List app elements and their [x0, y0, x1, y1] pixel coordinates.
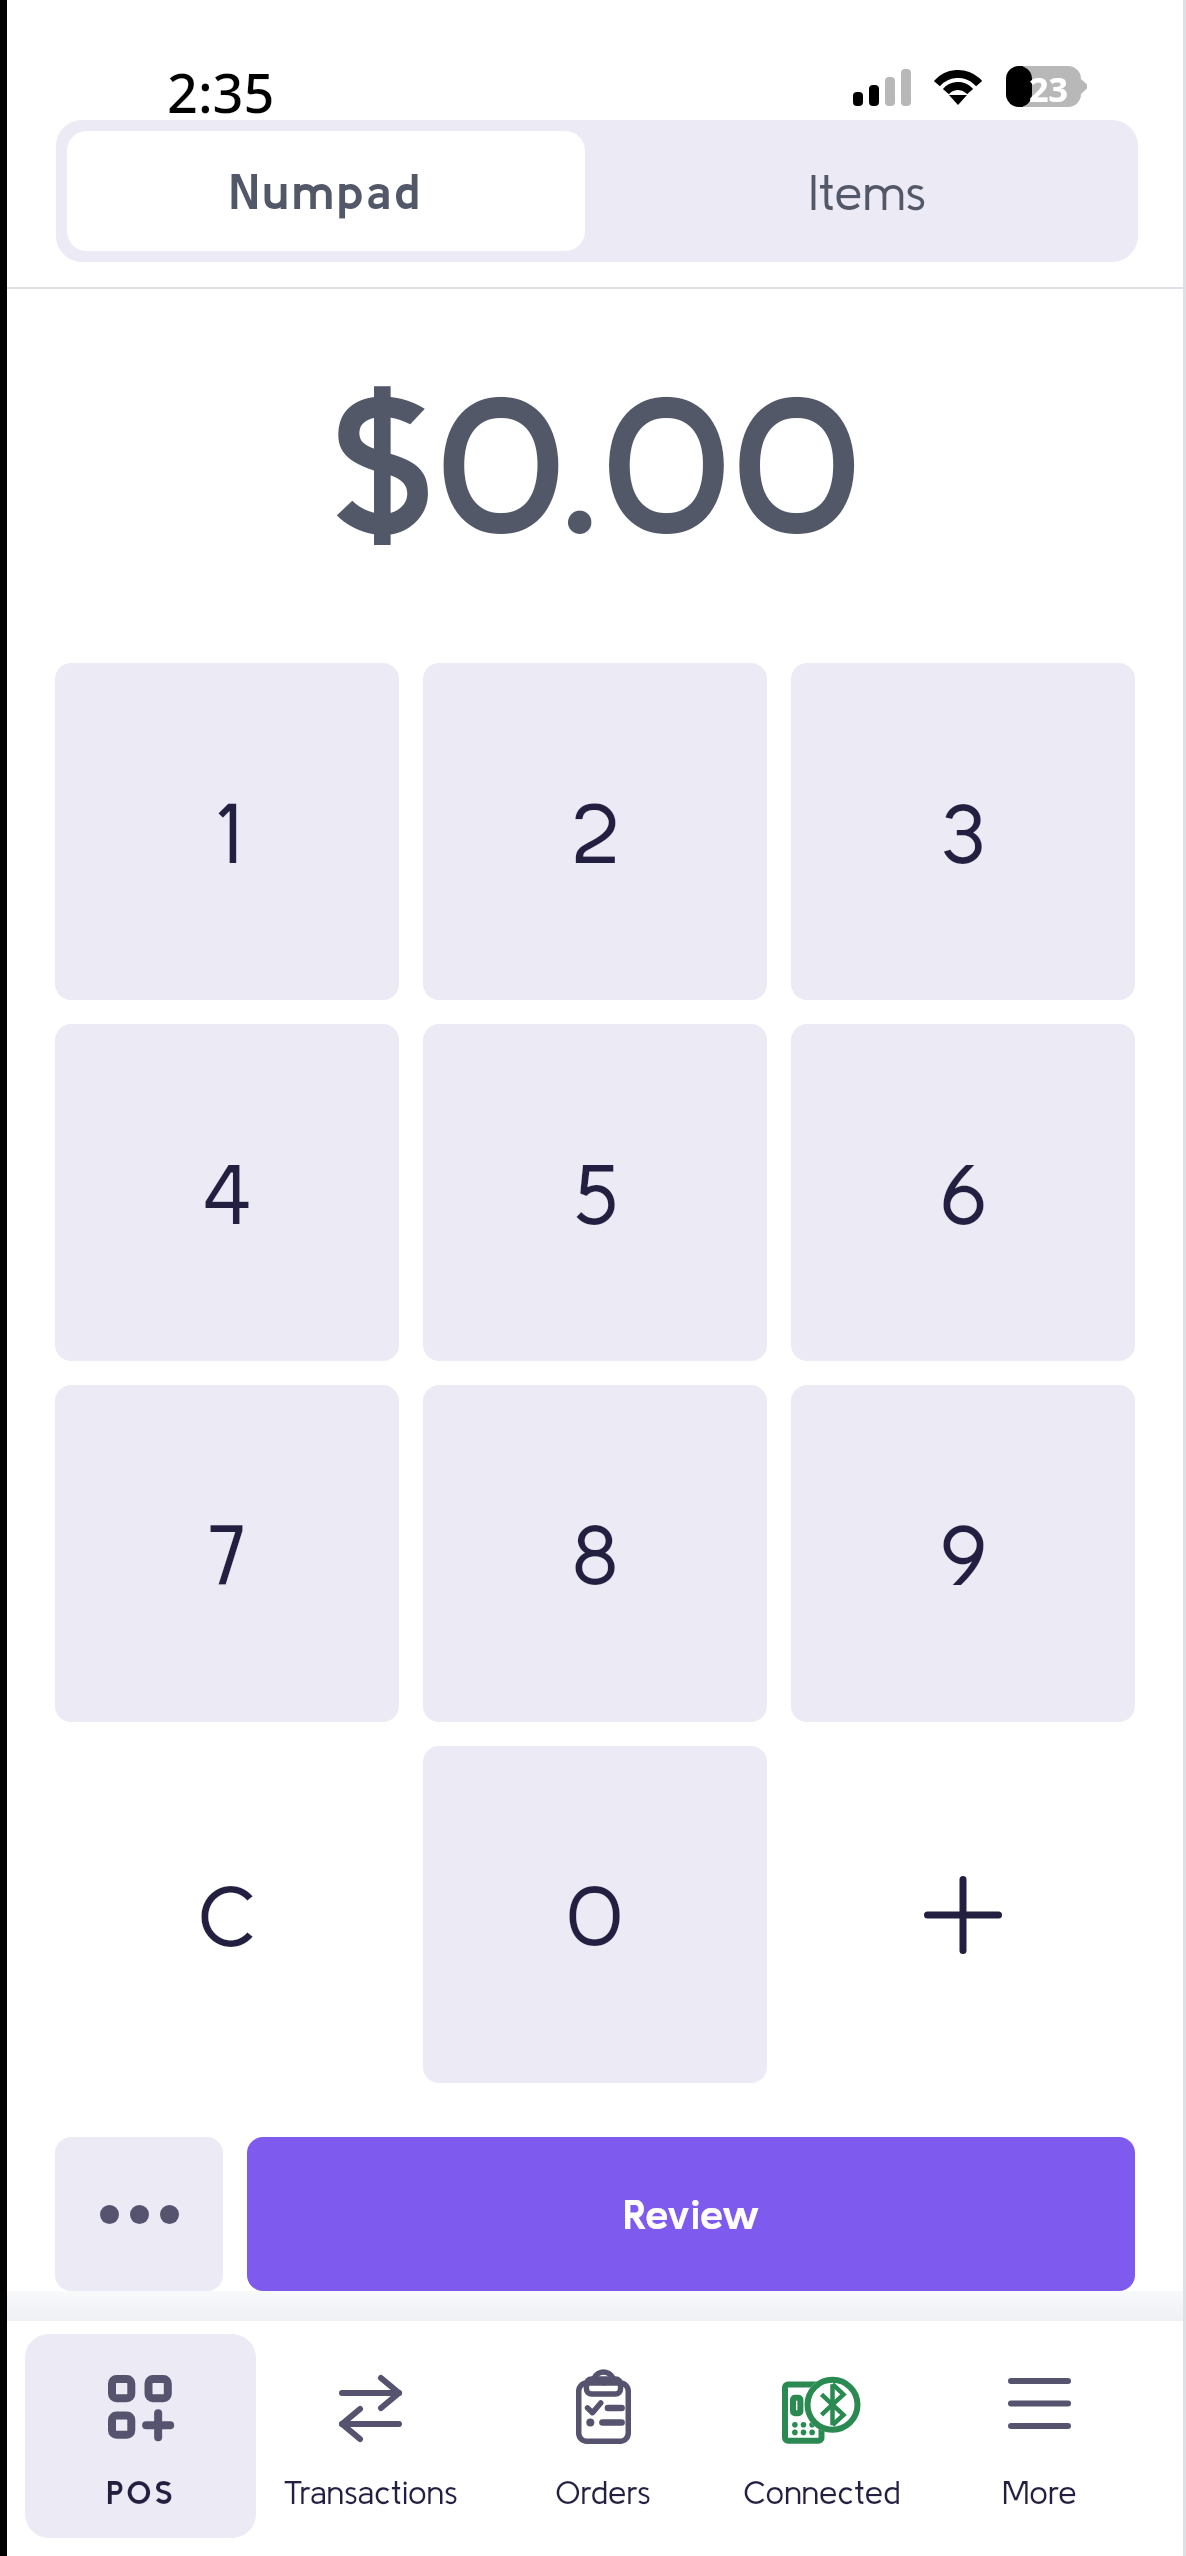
staticText: Numpad: [229, 163, 424, 219]
button[interactable]: Numpad: [67, 131, 585, 251]
button[interactable]: 4: [55, 1024, 399, 1361]
button[interactable]: 8: [423, 1385, 767, 1722]
staticText: 4: [202, 1145, 252, 1241]
button[interactable]: 1: [55, 663, 399, 1000]
button[interactable]: 0: [423, 1746, 767, 2083]
button[interactable]: Items: [597, 120, 1138, 262]
button[interactable]: 2: [423, 663, 767, 1000]
button[interactable]: Add item: [791, 1746, 1135, 2083]
staticText: Orders: [555, 2473, 651, 2510]
staticText: 1: [215, 784, 240, 880]
staticText: Transactions: [283, 2473, 458, 2510]
button[interactable]: 7: [55, 1385, 399, 1722]
staticText: 7: [207, 1506, 247, 1602]
button[interactable]: 5: [423, 1024, 767, 1361]
staticText: 6: [940, 1145, 987, 1241]
button[interactable]: 9: [791, 1385, 1135, 1722]
button[interactable]: More: [926, 2334, 1152, 2538]
button[interactable]: 6: [791, 1024, 1135, 1361]
staticText: 8: [572, 1506, 619, 1602]
staticText: $0.00: [329, 352, 862, 572]
staticText: 23: [1029, 66, 1068, 108]
staticText: POS: [106, 2473, 176, 2510]
staticText: 0: [566, 1867, 624, 1963]
staticText: 5: [573, 1145, 618, 1241]
staticText: 2:35: [167, 55, 275, 129]
staticText: Review: [623, 2190, 760, 2238]
button[interactable]: Review: [247, 2137, 1135, 2291]
staticText: 9: [940, 1506, 987, 1602]
button[interactable]: Transactions: [257, 2334, 483, 2538]
button[interactable]: Orders: [490, 2334, 716, 2538]
staticText: Items: [809, 163, 927, 220]
staticText: 2: [571, 784, 619, 880]
button[interactable]: POS: [25, 2334, 256, 2538]
staticText: Connected: [743, 2473, 901, 2510]
button[interactable]: 3: [791, 663, 1135, 1000]
staticText: C: [198, 1867, 257, 1963]
button[interactable]: More options: [55, 2137, 223, 2291]
staticText: 3: [940, 784, 986, 880]
button[interactable]: Connected: [709, 2334, 935, 2538]
button[interactable]: C: [55, 1746, 399, 2083]
staticText: More: [1002, 2473, 1077, 2510]
